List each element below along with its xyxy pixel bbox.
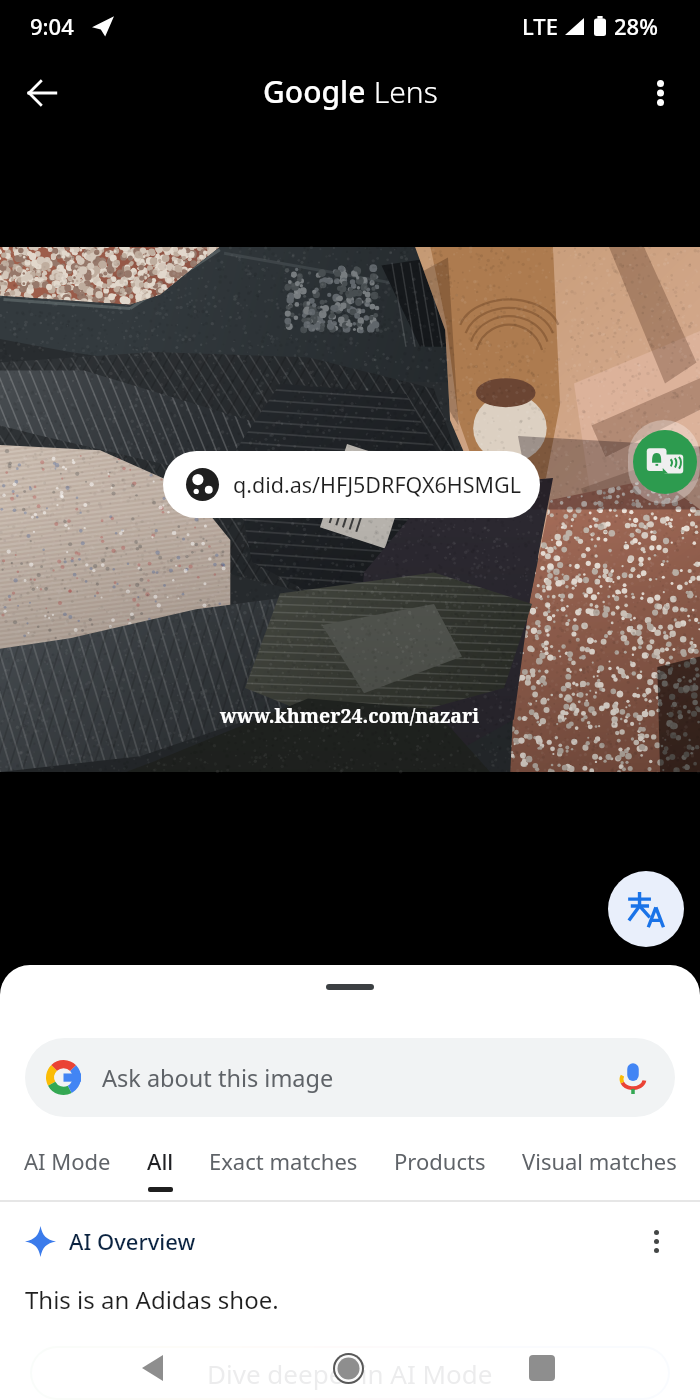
button[interactable]: Products xyxy=(394,1146,486,1176)
button[interactable]: More options xyxy=(634,1219,678,1263)
button[interactable]: q.did.as/HFJ5DRFQX6HSMGL xyxy=(163,451,540,518)
button[interactable]: AI Mode xyxy=(24,1146,111,1176)
button[interactable]: All xyxy=(147,1146,174,1192)
staticText: AI Mode xyxy=(24,1146,111,1176)
button[interactable]: Ask about this image xyxy=(25,1038,675,1117)
button[interactable]: Back xyxy=(122,1338,182,1398)
staticText: Google xyxy=(263,71,366,112)
button[interactable]: Back xyxy=(14,65,70,121)
button[interactable]: Visual matches xyxy=(522,1146,677,1176)
button[interactable]: More options xyxy=(632,65,688,121)
button[interactable]: Exact matches xyxy=(209,1146,358,1176)
staticText: All xyxy=(147,1146,174,1176)
staticText: AI Overview xyxy=(69,1226,196,1256)
staticText: Exact matches xyxy=(209,1146,358,1176)
button[interactable]: Dive deeper in AI Mode xyxy=(32,1348,668,1398)
staticText: www.khmer24.com/nazari xyxy=(220,702,480,729)
staticText: Products xyxy=(394,1146,486,1176)
staticText: Dive deeper in AI Mode xyxy=(207,1356,493,1391)
staticText: This is an Adidas shoe. xyxy=(25,1283,279,1316)
staticText: 9:04 xyxy=(30,11,74,41)
button[interactable]: Translate xyxy=(608,871,684,947)
staticText: Lens xyxy=(366,71,438,112)
button[interactable]: Recents xyxy=(512,1338,572,1398)
button[interactable]: Home xyxy=(318,1338,378,1398)
button[interactable]: Open app xyxy=(633,430,697,494)
staticText: Ask about this image xyxy=(102,1062,334,1094)
staticText: 28% xyxy=(614,11,658,41)
staticText: Visual matches xyxy=(522,1146,677,1176)
staticText: q.did.as/HFJ5DRFQX6HSMGL xyxy=(233,470,521,499)
staticText: LTE xyxy=(522,11,558,41)
